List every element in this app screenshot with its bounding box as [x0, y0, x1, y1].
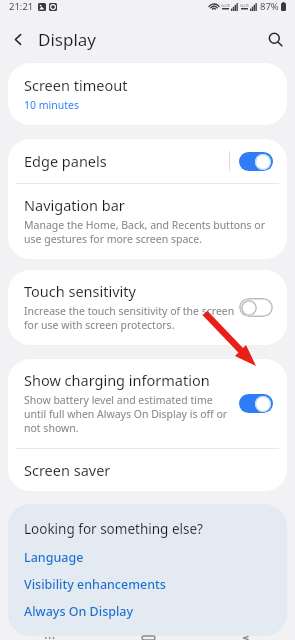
button[interactable]: Recents: [0, 636, 99, 640]
staticText: Always On Display: [24, 603, 134, 620]
staticText: VoLTE: [221, 4, 230, 8]
button[interactable]: Visibility enhancements: [24, 576, 271, 593]
staticText: Edge panels: [24, 151, 229, 171]
staticText: 10 minutes: [24, 98, 79, 112]
staticText: Increase the touch sensitivity of the sc…: [24, 304, 235, 332]
staticText: Display: [38, 28, 96, 51]
staticText: Visibility enhancements: [24, 576, 166, 593]
button[interactable]: Show charging information: [8, 359, 287, 448]
button[interactable]: Back: [197, 636, 295, 640]
staticText: Manage the Home, Back, and Recents butto…: [24, 218, 271, 246]
button[interactable]: Toggle off: [239, 298, 273, 317]
button[interactable]: Toggle on: [239, 394, 273, 413]
button[interactable]: Home: [99, 636, 197, 640]
button[interactable]: Navigation bar: [8, 184, 287, 259]
button[interactable]: Language: [24, 549, 271, 566]
button[interactable]: Toggle on: [239, 152, 273, 171]
button[interactable]: Always On Display: [24, 603, 271, 620]
staticText: 21:21: [9, 0, 34, 13]
staticText: Navigation bar: [24, 195, 125, 215]
button[interactable]: Screen saver: [8, 449, 287, 491]
staticText: Screen saver: [24, 460, 111, 480]
button[interactable]: Search: [255, 22, 295, 56]
staticText: Show charging information: [24, 370, 210, 390]
button[interactable]: Back: [0, 22, 36, 56]
staticText: 87%: [260, 0, 279, 13]
staticText: Show battery level and estimated time un…: [24, 393, 235, 435]
button[interactable]: Screen timeout: [8, 63, 287, 125]
staticText: Looking for something else?: [24, 520, 203, 538]
staticText: Touch sensitivity: [24, 281, 136, 301]
button[interactable]: Edge panels: [8, 139, 287, 183]
staticText: Language: [24, 549, 84, 566]
staticText: Screen timeout: [24, 75, 128, 95]
staticText: VoLTE: [240, 4, 249, 8]
button[interactable]: Touch sensitivity: [8, 270, 287, 345]
